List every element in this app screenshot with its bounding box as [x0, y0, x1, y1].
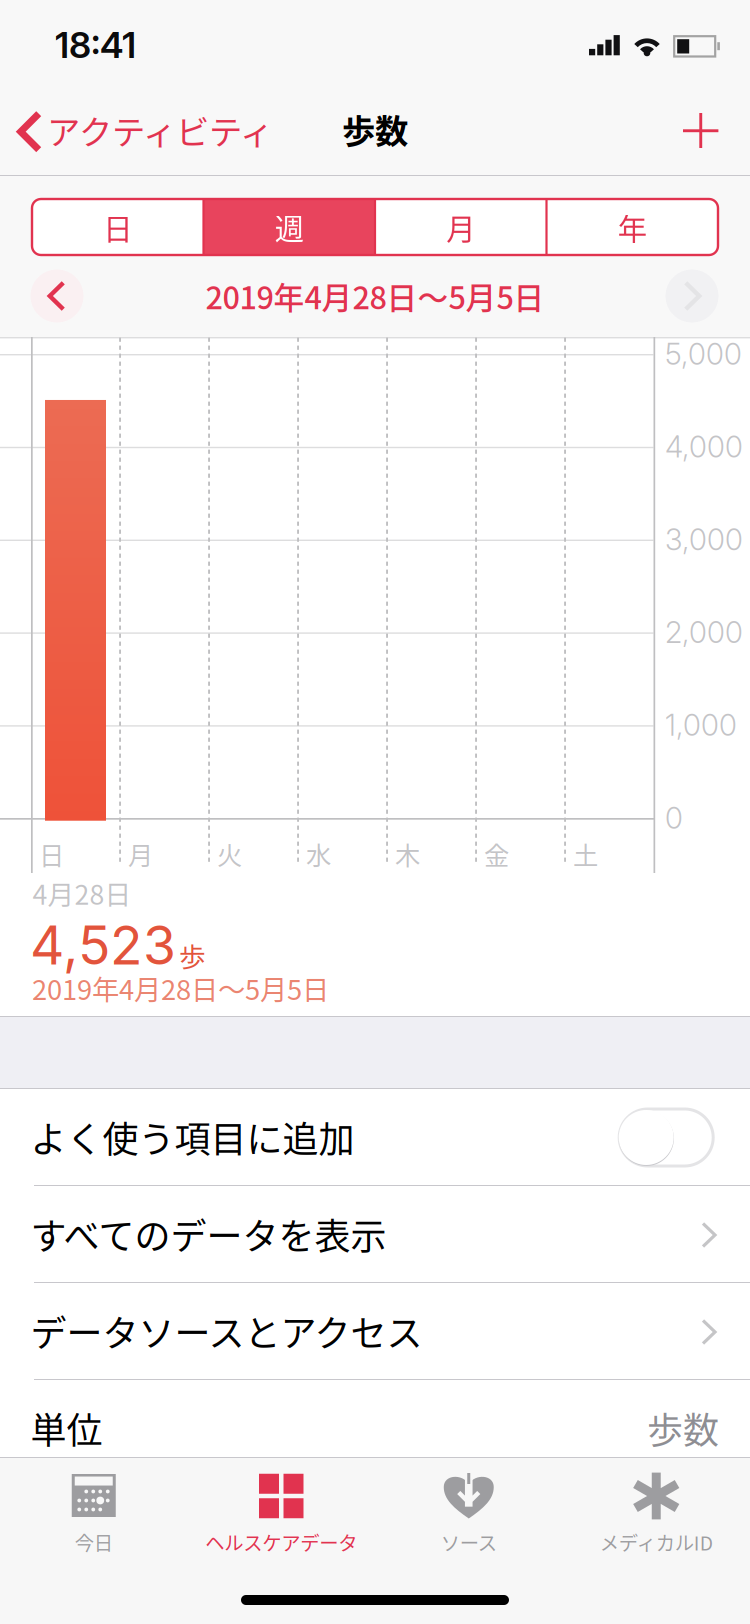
- staticText: 4,523: [30, 913, 176, 977]
- staticText: よく使う項目に追加: [30, 1111, 354, 1163]
- staticText: 木: [395, 836, 420, 872]
- staticText: 2019年4月28日〜5月5日: [205, 274, 544, 318]
- button[interactable]: ヘルスケアデータ: [187, 1458, 375, 1560]
- staticText: 18:41: [55, 23, 136, 67]
- staticText: 月: [446, 206, 475, 248]
- button[interactable]: データを追加: [664, 88, 750, 176]
- staticText: 歩数: [647, 1402, 719, 1454]
- staticText: 1,000: [665, 707, 737, 743]
- staticText: 今日: [75, 1528, 113, 1556]
- staticText: 3,000: [665, 522, 743, 557]
- staticText: 火: [217, 836, 242, 872]
- staticText: 週: [275, 206, 304, 248]
- button[interactable]: 今日: [0, 1458, 187, 1560]
- staticText: ソース: [441, 1528, 497, 1556]
- staticText: 年: [618, 206, 647, 248]
- staticText: ヘルスケアデータ: [205, 1528, 357, 1556]
- staticText: 水: [306, 836, 331, 872]
- button[interactable]: 月: [375, 199, 546, 255]
- staticText: 歩: [179, 936, 206, 974]
- staticText: 日: [39, 836, 64, 872]
- staticText: 4,000: [665, 429, 743, 465]
- button[interactable]: 前の週: [24, 263, 90, 329]
- staticText: すべてのデータを表示: [30, 1208, 386, 1260]
- staticText: 土: [573, 836, 598, 872]
- button[interactable]: すべてのデータを表示: [0, 1186, 750, 1282]
- button[interactable]: 単位: [0, 1380, 750, 1476]
- staticText: 2,000: [665, 615, 743, 650]
- button[interactable]: 次の週: [659, 263, 725, 329]
- staticText: 2019年4月28日〜5月5日: [32, 968, 329, 1008]
- button[interactable]: ソース: [375, 1458, 562, 1560]
- button[interactable]: メディカルID: [562, 1458, 750, 1560]
- staticText: 金: [484, 836, 509, 872]
- staticText: 4月28日: [32, 874, 131, 912]
- button[interactable]: アクティビティ: [0, 88, 300, 176]
- button[interactable]: 日: [32, 199, 203, 255]
- staticText: 歩数: [342, 105, 408, 153]
- staticText: アクティビティ: [47, 106, 273, 154]
- staticText: 月: [128, 836, 153, 872]
- staticText: 0: [665, 800, 683, 836]
- button[interactable]: 週: [203, 199, 375, 255]
- button[interactable]: よく使う項目に追加: [0, 1089, 750, 1185]
- button[interactable]: データソースとアクセス: [0, 1283, 750, 1379]
- staticText: データソースとアクセス: [30, 1305, 422, 1357]
- staticText: メディカルID: [600, 1528, 713, 1556]
- staticText: 単位: [30, 1402, 102, 1454]
- staticText: 5,000: [665, 336, 742, 372]
- staticText: 日: [103, 206, 132, 248]
- button[interactable]: 年: [546, 199, 718, 255]
